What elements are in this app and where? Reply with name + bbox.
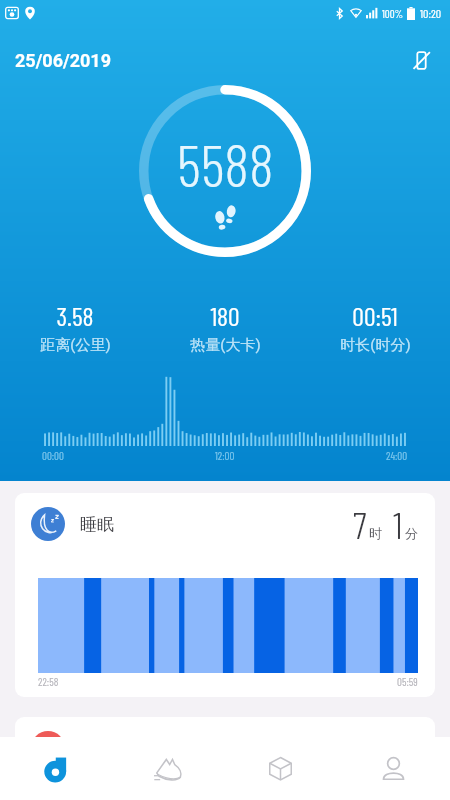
staticText: 05:59 <box>397 675 418 688</box>
staticText: 时 <box>369 525 382 541</box>
staticText: 25/06/2019 <box>15 50 111 71</box>
staticText: 12:00 <box>215 449 235 462</box>
staticText: 00:51 <box>352 300 398 331</box>
button[interactable]: 睡眠 <box>15 493 435 697</box>
staticText: 睡眠 <box>80 514 114 535</box>
staticText: 7 <box>353 501 367 547</box>
staticText: 热量(大卡) <box>190 336 261 355</box>
staticText: 时长(时分) <box>340 336 411 355</box>
button[interactable]: 3.58 <box>0 300 150 355</box>
staticText: 00:00 <box>42 449 64 462</box>
staticText: 3.58 <box>56 300 94 331</box>
button[interactable]: 00:51 <box>300 300 450 355</box>
staticText: 分 <box>405 525 418 541</box>
staticText: 72 <box>389 725 418 771</box>
button[interactable]: Home <box>0 737 112 800</box>
button[interactable]: Device <box>224 737 337 800</box>
button[interactable]: Profile <box>337 737 450 800</box>
staticText: 1 <box>393 501 403 547</box>
staticText: 100% <box>382 7 404 20</box>
button[interactable]: Activity <box>112 737 224 800</box>
staticText: 5588 <box>177 128 274 199</box>
staticText: 22:58 <box>38 675 59 688</box>
staticText: 10:20 <box>420 6 442 20</box>
button[interactable]: 心率 <box>15 717 435 800</box>
button[interactable]: 25/06/2019 <box>15 50 111 71</box>
button[interactable]: 180 <box>150 300 300 355</box>
staticText: 距离(公里) <box>40 336 111 355</box>
staticText: 180 <box>210 300 240 331</box>
staticText: 24:00 <box>386 449 408 462</box>
button[interactable]: Vibration off <box>404 43 438 77</box>
